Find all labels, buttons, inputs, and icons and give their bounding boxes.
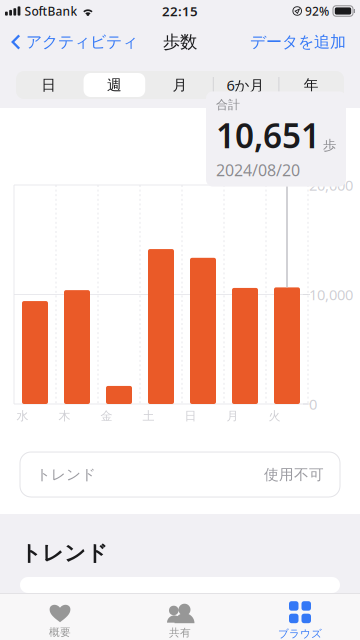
staticText: ブラウズ (278, 627, 322, 640)
staticText: 月 (172, 76, 187, 94)
button[interactable]: アクティビティ (0, 28, 138, 56)
staticText: 2024/08/20 (216, 159, 300, 181)
staticText: 20,000 (309, 175, 353, 195)
staticText: トレンド (36, 465, 96, 483)
staticText: 水 (16, 409, 28, 423)
staticText: 合計 (216, 97, 240, 112)
staticText: 火 (268, 409, 280, 423)
staticText: 10,651 (216, 113, 320, 157)
staticText: 22:15 (162, 2, 198, 20)
staticText: トレンド (20, 540, 108, 566)
staticText: SoftBank (24, 3, 77, 19)
staticText: 年 (304, 76, 319, 94)
button[interactable]: 月 (147, 71, 213, 99)
button[interactable]: データを追加 (250, 28, 360, 56)
button[interactable]: 週 (82, 71, 147, 99)
staticText: 共有 (169, 626, 191, 639)
staticText: 歩数 (163, 31, 197, 53)
button[interactable]: 日 (16, 71, 82, 99)
staticText: 概要 (49, 626, 71, 639)
staticText: 日 (41, 76, 56, 94)
staticText: 木 (58, 409, 70, 423)
staticText: アクティビティ (26, 32, 138, 52)
staticText: 6か月 (227, 75, 265, 95)
button[interactable]: 概要 (0, 595, 120, 639)
staticText: 10,000 (309, 285, 353, 304)
button[interactable]: 年 (278, 71, 344, 99)
staticText: 0 (309, 394, 317, 414)
button[interactable]: 共有 (120, 594, 240, 639)
staticText: 歩 (323, 137, 336, 153)
staticText: 週 (107, 76, 122, 94)
staticText: データを追加 (250, 32, 346, 52)
staticText: 日 (184, 409, 196, 423)
button[interactable]: 6か月 (213, 71, 278, 99)
staticText: 使用不可 (264, 465, 324, 483)
staticText: 月 (226, 409, 238, 423)
staticText: 土 (142, 409, 154, 423)
button[interactable]: ブラウズ (240, 593, 360, 640)
staticText: 金 (100, 409, 112, 423)
staticText: 92% (305, 3, 329, 19)
